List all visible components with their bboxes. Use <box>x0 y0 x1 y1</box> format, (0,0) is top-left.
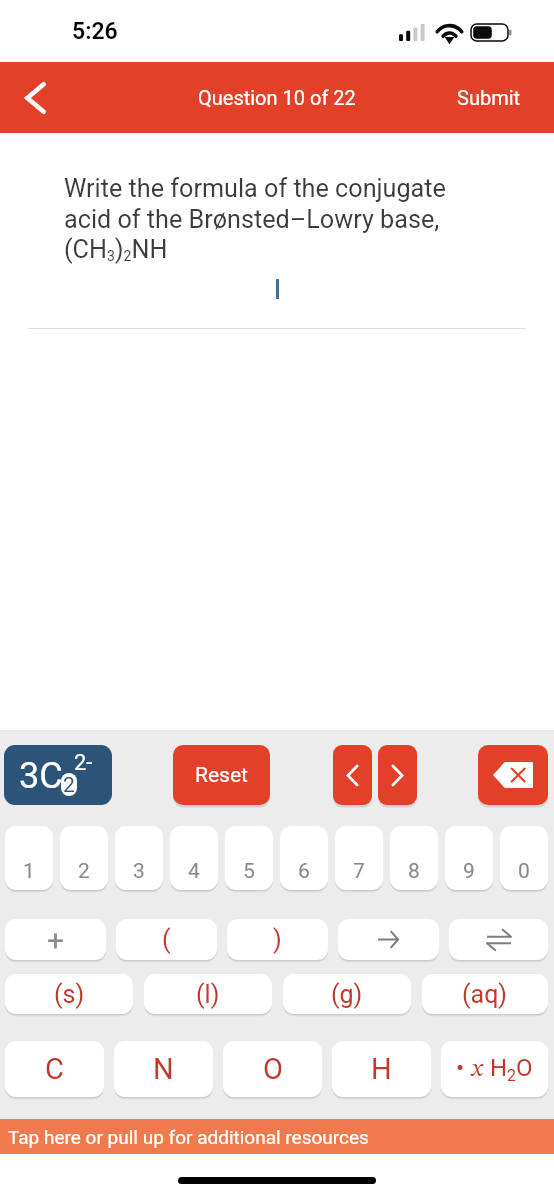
button[interactable]: 9 <box>445 826 493 890</box>
staticText: ( <box>162 925 171 954</box>
button[interactable]: 3C <box>4 745 112 805</box>
button[interactable]: (g) <box>283 974 411 1014</box>
button[interactable]: + <box>5 919 106 960</box>
button[interactable]: C <box>5 1041 104 1097</box>
staticText: 5:26 <box>72 18 118 45</box>
button[interactable]: 4 <box>170 826 218 890</box>
staticText: 3 <box>133 859 145 884</box>
button[interactable]: Tap here or pull up for additional resou… <box>0 1119 554 1154</box>
button[interactable]: 6 <box>280 826 328 890</box>
staticText: 6 <box>298 859 310 884</box>
staticText: (l) <box>196 980 220 1009</box>
staticText: 2- <box>74 750 93 776</box>
staticText: H <box>371 1052 392 1086</box>
button[interactable]: Next <box>378 745 417 805</box>
staticText: 0 <box>518 859 530 884</box>
button[interactable]: 5 <box>225 826 273 890</box>
staticText: N <box>153 1052 174 1086</box>
staticText: Tap here or pull up for additional resou… <box>8 1126 369 1148</box>
button[interactable]: 0 <box>500 826 548 890</box>
button[interactable]: H <box>332 1041 431 1097</box>
button[interactable]: 2 <box>60 826 108 890</box>
button[interactable]: Backspace <box>478 745 548 805</box>
button[interactable]: Yields <box>338 919 439 960</box>
staticText: 2 <box>78 859 90 884</box>
staticText: 1 <box>23 859 35 884</box>
staticText: Question 10 of 22 <box>198 86 356 109</box>
staticText: 7 <box>353 859 365 884</box>
button[interactable]: (l) <box>144 974 272 1014</box>
button[interactable]: (s) <box>5 974 133 1014</box>
button[interactable]: Equilibrium <box>449 919 548 960</box>
button[interactable]: Previous <box>333 745 372 805</box>
button[interactable]: • 𝑥 H2O <box>441 1041 548 1097</box>
staticText: 2 <box>63 773 75 796</box>
button[interactable]: O <box>223 1041 322 1097</box>
button[interactable]: ) <box>227 919 328 960</box>
button[interactable]: (aq) <box>422 974 548 1014</box>
staticText: ) <box>273 925 282 954</box>
button[interactable]: Submit <box>433 62 554 133</box>
button[interactable]: N <box>114 1041 213 1097</box>
staticText: 9 <box>463 859 475 884</box>
staticText: 5 <box>243 859 255 884</box>
staticText: (s) <box>54 980 85 1009</box>
staticText: (aq) <box>462 980 508 1009</box>
button[interactable]: 1 <box>5 826 53 890</box>
staticText: (g) <box>331 980 363 1009</box>
staticText: Reset <box>195 763 248 788</box>
staticText: • 𝑥 H2O <box>456 1054 533 1085</box>
staticText: 3C <box>19 755 63 797</box>
staticText: C <box>45 1052 64 1086</box>
button[interactable]: Reset <box>173 745 270 805</box>
staticText: 8 <box>408 859 420 884</box>
staticText: Submit <box>457 86 521 109</box>
button[interactable]: 3 <box>115 826 163 890</box>
button[interactable]: ( <box>116 919 217 960</box>
button[interactable]: 8 <box>390 826 438 890</box>
staticText: 4 <box>188 859 200 884</box>
button[interactable]: Back <box>0 62 71 133</box>
button[interactable]: 7 <box>335 826 383 890</box>
staticText: Write the formula of the conjugate acid … <box>64 174 468 265</box>
staticText: + <box>47 923 65 958</box>
staticText: O <box>263 1052 283 1086</box>
